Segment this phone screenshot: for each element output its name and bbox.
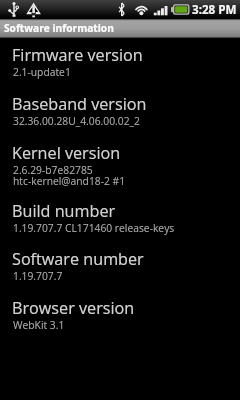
- staticText: 32.36.00.28U_4.06.00.02_2: [13, 114, 140, 128]
- staticText: 1.19.707.7 CL171460 release-keys: [13, 221, 175, 235]
- button[interactable]: Baseband version: [0, 93, 240, 141]
- staticText: Kernel version: [12, 142, 121, 164]
- staticText: 1.19.707.7: [13, 269, 63, 283]
- staticText: Firmware version: [12, 44, 143, 66]
- button[interactable]: Software information: [0, 19, 240, 38]
- button[interactable]: Kernel version: [0, 142, 240, 199]
- other: Bluetooth on: [118, 0, 126, 19]
- other: USB connected: [8, 0, 19, 19]
- staticText: htc-kernel@and18-2 #1: [13, 174, 126, 188]
- staticText: Build number: [12, 200, 116, 222]
- staticText: 2.6.29-b7e82785: [13, 163, 93, 177]
- other: Battery full: [171, 0, 190, 19]
- staticText: Baseband version: [12, 93, 147, 115]
- staticText: Software number: [12, 248, 144, 270]
- staticText: 2.1-update1: [13, 65, 71, 79]
- staticText: 3:28 PM: [192, 2, 237, 18]
- staticText: Software information: [4, 21, 114, 35]
- button[interactable]: Browser version: [0, 297, 240, 345]
- button[interactable]: Firmware version: [0, 44, 240, 92]
- other: Mobile signal full: [153, 0, 168, 19]
- button[interactable]: Build number: [0, 200, 240, 248]
- other: USB debugging enabled: [26, 0, 41, 19]
- staticText: WebKit 3.1: [13, 318, 65, 332]
- button[interactable]: Software number: [0, 248, 240, 296]
- other: Wi-Fi connected: [134, 0, 149, 19]
- staticText: Browser version: [12, 297, 135, 319]
